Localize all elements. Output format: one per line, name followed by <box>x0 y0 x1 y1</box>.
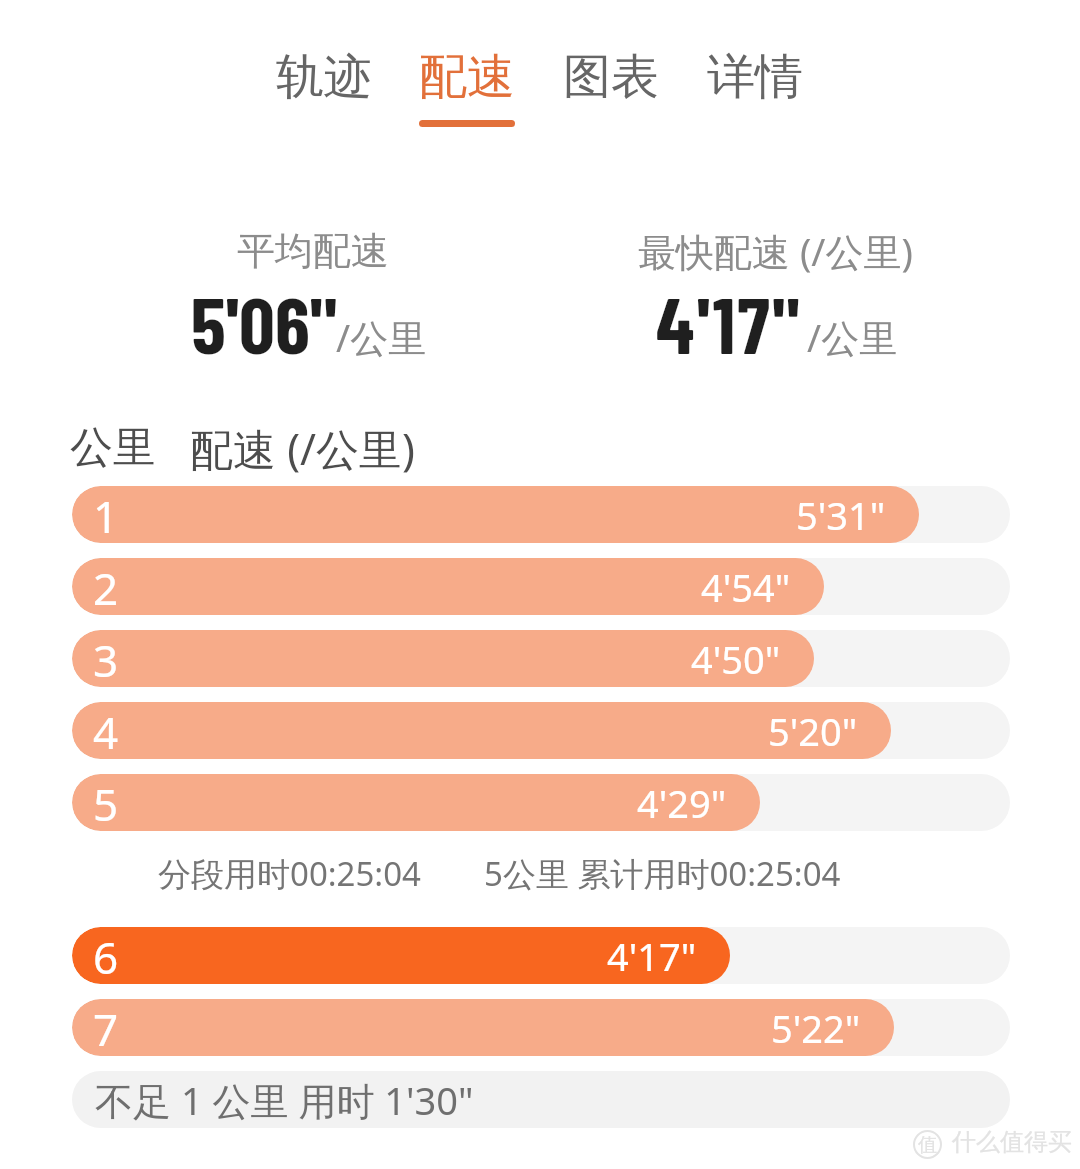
button[interactable]: 2 <box>72 558 1010 615</box>
button[interactable]: 1 <box>72 486 1010 543</box>
button[interactable]: 轨迹 <box>253 30 395 135</box>
staticText: 公里 <box>70 421 156 475</box>
button[interactable]: 6 <box>72 927 1010 984</box>
staticText: 最快配速 (/公里) <box>638 225 913 277</box>
staticText: 5'22" <box>771 1002 861 1054</box>
staticText: 4'54" <box>701 561 791 613</box>
staticText: 4 <box>93 702 119 759</box>
staticText: 3 <box>93 630 119 687</box>
staticText: /公里 <box>336 311 427 363</box>
staticText: 值 <box>918 1133 937 1157</box>
button[interactable]: 5 <box>72 774 1010 831</box>
staticText: 5'06" <box>191 275 337 370</box>
staticText: 5 <box>93 774 119 831</box>
button[interactable]: 3 <box>72 630 1010 687</box>
staticText: 详情 <box>707 47 803 107</box>
staticText: 轨迹 <box>276 47 372 107</box>
staticText: 4'29" <box>637 777 727 829</box>
staticText: 4'17" <box>607 930 697 982</box>
staticText: 5'20" <box>768 705 858 757</box>
button[interactable]: 详情 <box>684 30 826 135</box>
staticText: 分段用时00:25:04 <box>158 851 421 896</box>
staticText: 配速 <box>419 47 515 107</box>
staticText: 2 <box>93 558 119 615</box>
staticText: 平均配速 <box>237 227 389 275</box>
button[interactable]: 图表 <box>540 30 682 135</box>
staticText: 6 <box>93 927 119 984</box>
staticText: /公里 <box>807 311 898 363</box>
button[interactable]: 配速 <box>396 30 538 135</box>
staticText: 7 <box>93 999 119 1056</box>
button[interactable]: 不足 1 公里 用时 1'30" <box>72 1071 1010 1128</box>
staticText: 图表 <box>563 47 659 107</box>
staticText: 4'50" <box>691 633 781 685</box>
button[interactable]: 4 <box>72 702 1010 759</box>
staticText: 5公里 累计用时00:25:04 <box>484 851 841 896</box>
button[interactable]: 7 <box>72 999 1010 1056</box>
staticText: 1 <box>93 486 119 543</box>
staticText: 4'17" <box>656 275 803 370</box>
staticText: 什么值得买 <box>952 1127 1072 1157</box>
staticText: 5'31" <box>796 489 886 541</box>
staticText: 配速 (/公里) <box>190 419 415 478</box>
staticText: 不足 1 公里 用时 1'30" <box>95 1074 474 1126</box>
